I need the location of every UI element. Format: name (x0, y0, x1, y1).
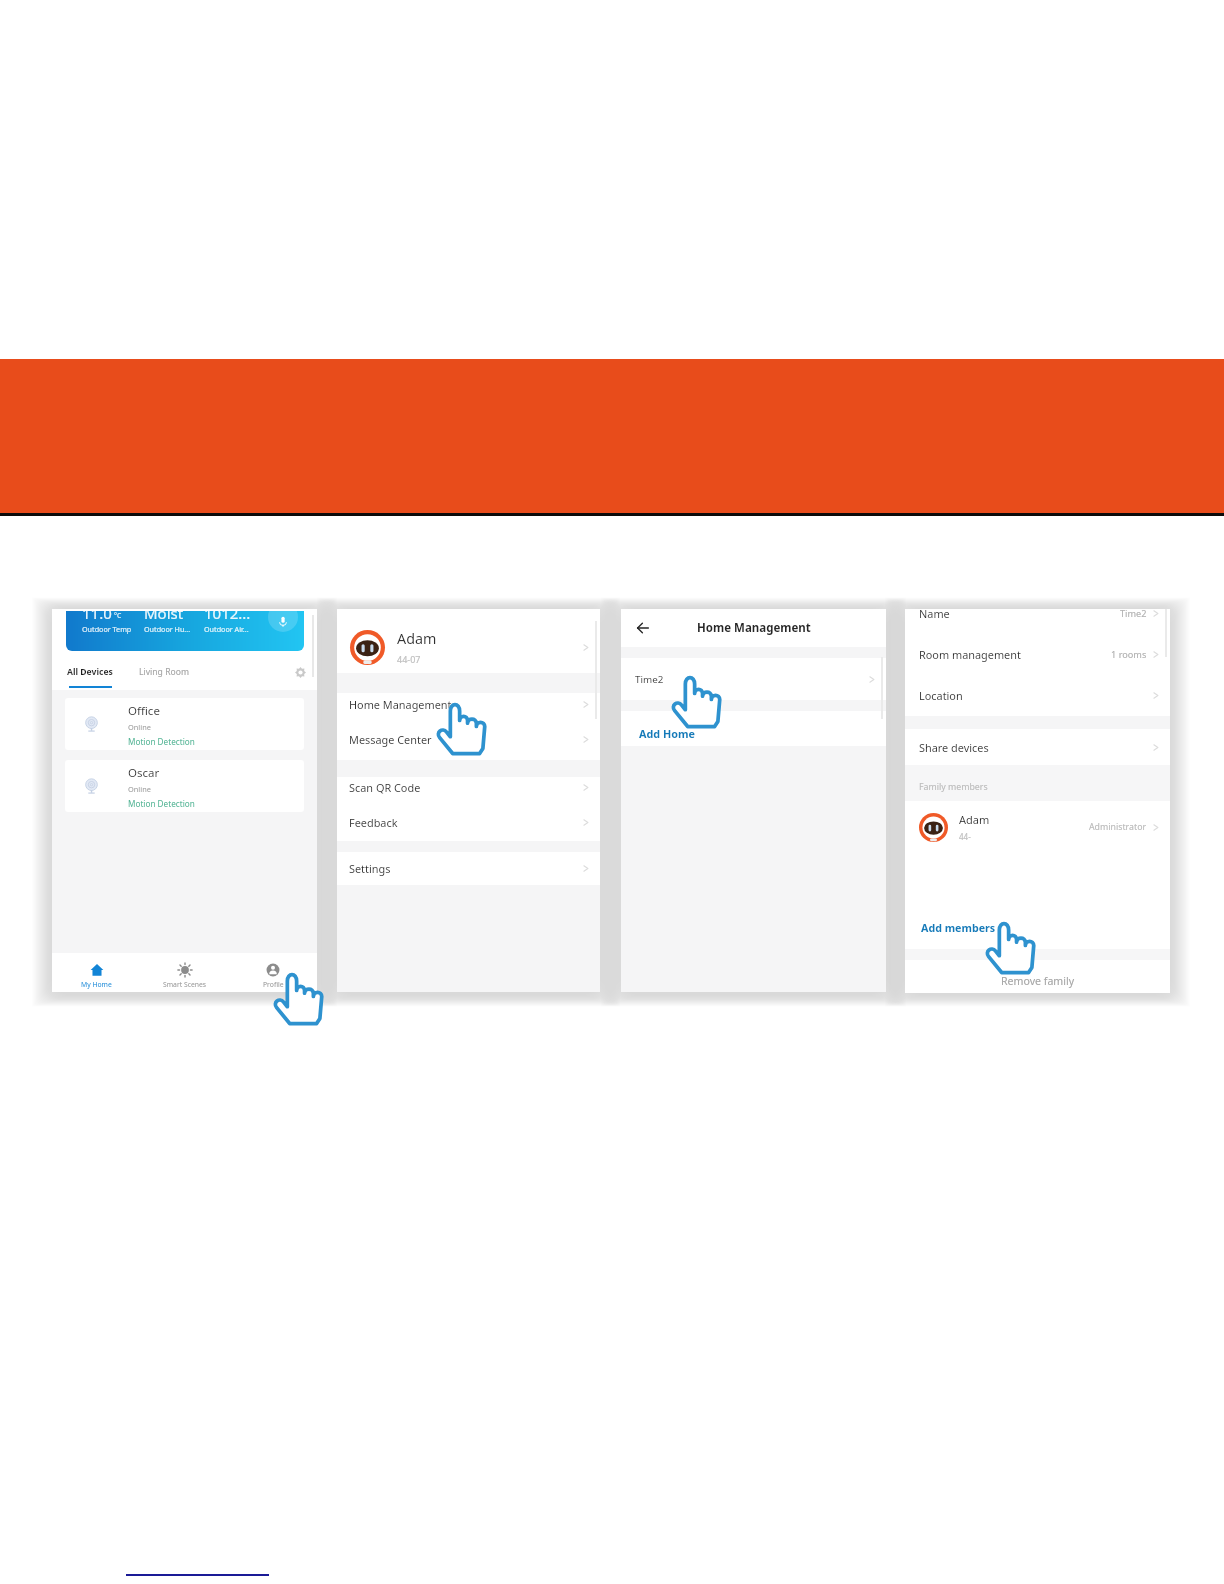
button[interactable]: Location (905, 675, 1170, 716)
button[interactable]: My Home (52, 960, 141, 986)
staticText: Name (919, 606, 950, 621)
staticText: 11.0 (82, 611, 112, 623)
button[interactable]: Name (905, 593, 1170, 634)
staticText: Outdoor Air... (204, 624, 249, 634)
button[interactable]: Living Room (139, 666, 189, 678)
staticText: Share devices (919, 740, 989, 755)
button[interactable]: Message Center (337, 725, 600, 753)
button[interactable]: Adam (337, 609, 600, 673)
staticText: Profile (263, 980, 284, 989)
button[interactable]: Share devices (905, 729, 1170, 765)
staticText: Home Management (697, 620, 811, 636)
staticText: Room management (919, 647, 1021, 662)
staticText: Adam (397, 629, 437, 648)
button[interactable]: Oscar (65, 760, 304, 812)
button[interactable]: Add Home (621, 711, 886, 746)
staticText: Oscar (128, 765, 160, 781)
staticText: Smart Scenes (163, 980, 207, 989)
button[interactable]: Time2 (621, 658, 886, 700)
button[interactable]: Room management (905, 634, 1170, 675)
button[interactable]: Remove family (905, 960, 1170, 993)
button[interactable]: 11.0 (66, 611, 304, 651)
button[interactable]: Room settings (291, 663, 309, 681)
button[interactable]: Add members (905, 908, 1170, 948)
staticText: 44-07 (397, 653, 421, 665)
button[interactable]: Smart Scenes (141, 960, 229, 986)
staticText: Time2 (635, 673, 664, 686)
staticText: Online (128, 722, 151, 732)
staticText: Time2 (1120, 607, 1147, 620)
staticText: Motion Detection (128, 798, 195, 809)
staticText: Settings (349, 861, 391, 876)
staticText: Family members (919, 781, 988, 793)
staticText: Motion Detection (128, 736, 195, 747)
staticText: Outdoor Temp (82, 624, 132, 634)
staticText: Online (128, 784, 151, 794)
button[interactable]: Scan QR Code (337, 773, 600, 801)
staticText: Scan QR Code (349, 780, 421, 795)
button[interactable]: Home Management (337, 690, 600, 718)
staticText: Moist (144, 611, 184, 623)
staticText: Feedback (349, 815, 398, 830)
staticText: Message Center (349, 732, 432, 747)
button[interactable]: Adam (905, 801, 1170, 853)
staticText: 1012... (204, 611, 251, 623)
button[interactable]: Voice assistant (268, 611, 298, 632)
staticText: Location (919, 688, 963, 703)
button[interactable]: Settings (337, 854, 600, 882)
staticText: All Devices (67, 666, 113, 678)
staticText: Home Management (349, 697, 452, 712)
staticText: °C (114, 611, 122, 620)
staticText: My Home (81, 980, 112, 989)
staticText: 1 rooms (1111, 648, 1147, 661)
staticText: 44- (959, 831, 971, 842)
button[interactable]: All Devices (67, 666, 113, 688)
button[interactable]: Feedback (337, 808, 600, 836)
staticText: Office (128, 703, 160, 719)
staticText: Living Room (139, 666, 189, 678)
button[interactable]: Profile (229, 960, 317, 986)
button[interactable]: Back (632, 609, 654, 647)
staticText: Outdoor Hu... (144, 624, 191, 634)
staticText: Adam (959, 812, 990, 827)
staticText: Administrator (1089, 821, 1147, 833)
staticText: Add members (921, 921, 996, 936)
staticText: Remove family (1001, 974, 1075, 988)
button[interactable]: Office (65, 698, 304, 750)
staticText: Add Home (639, 726, 695, 741)
